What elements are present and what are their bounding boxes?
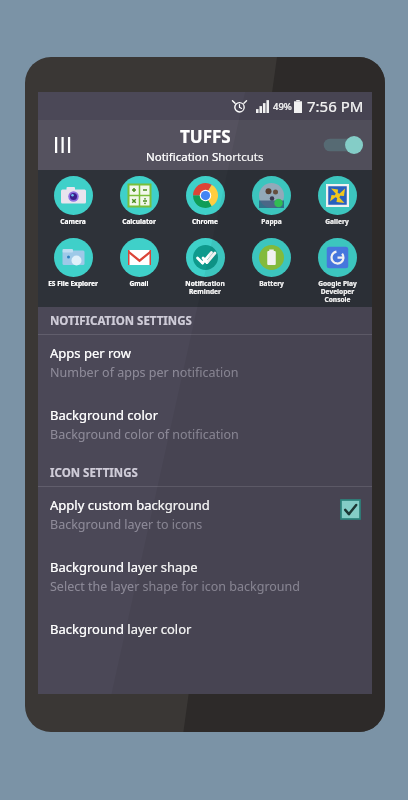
button[interactable]: Notification Reminder xyxy=(172,235,238,296)
button[interactable]: Apply custom background checkbox xyxy=(341,500,360,519)
staticText: Pappa xyxy=(261,217,282,226)
button[interactable]: Background color xyxy=(38,397,372,459)
staticText: Background layer shape xyxy=(50,558,198,576)
staticText: Gallery xyxy=(325,217,349,226)
button[interactable]: Camera xyxy=(40,173,106,226)
staticText: NOTIFICATION SETTINGS xyxy=(50,313,192,329)
staticText: Background layer color xyxy=(50,620,192,638)
button[interactable]: Apps per row xyxy=(38,335,372,397)
button[interactable]: Battery xyxy=(238,235,304,288)
staticText: Gmail xyxy=(129,279,149,288)
staticText: 7:56 PM xyxy=(307,96,364,116)
button[interactable]: ES File Explorer xyxy=(40,235,106,288)
button[interactable]: Menu xyxy=(46,127,82,163)
staticText: Chrome xyxy=(192,217,218,226)
button[interactable]: Enable notification shortcuts xyxy=(320,130,366,160)
button[interactable]: Apply custom background xyxy=(38,487,372,549)
staticText: Number of apps per notification xyxy=(50,364,239,381)
button[interactable]: Pappa xyxy=(238,173,304,226)
staticText: Apply custom background xyxy=(50,496,210,514)
staticText: 49% xyxy=(273,100,292,113)
staticText: Select the layer shape for icon backgrou… xyxy=(50,578,300,595)
button[interactable]: Chrome xyxy=(172,173,238,226)
staticText: Battery xyxy=(259,279,284,288)
staticText: Background color of notification xyxy=(50,426,239,443)
staticText: Google Play Developer Console xyxy=(318,279,357,304)
staticText: Camera xyxy=(60,217,86,226)
staticText: Notification Shortcuts xyxy=(146,149,264,165)
staticText: Notification Reminder xyxy=(185,279,225,296)
button[interactable]: Google Play Developer Console xyxy=(304,235,370,304)
staticText: Apps per row xyxy=(50,344,131,362)
staticText: TUFFS xyxy=(180,125,231,148)
staticText: ICON SETTINGS xyxy=(50,465,138,481)
button[interactable]: Calculator xyxy=(106,173,172,226)
button[interactable]: Gallery xyxy=(304,173,370,226)
staticText: Calculator xyxy=(122,217,156,226)
staticText: Background layer to icons xyxy=(50,516,203,533)
staticText: Background color xyxy=(50,406,159,424)
button[interactable]: Gmail xyxy=(106,235,172,288)
staticText: ES File Explorer xyxy=(48,279,98,288)
button[interactable]: Background layer shape xyxy=(38,549,372,611)
button[interactable]: Background layer color xyxy=(38,611,372,673)
